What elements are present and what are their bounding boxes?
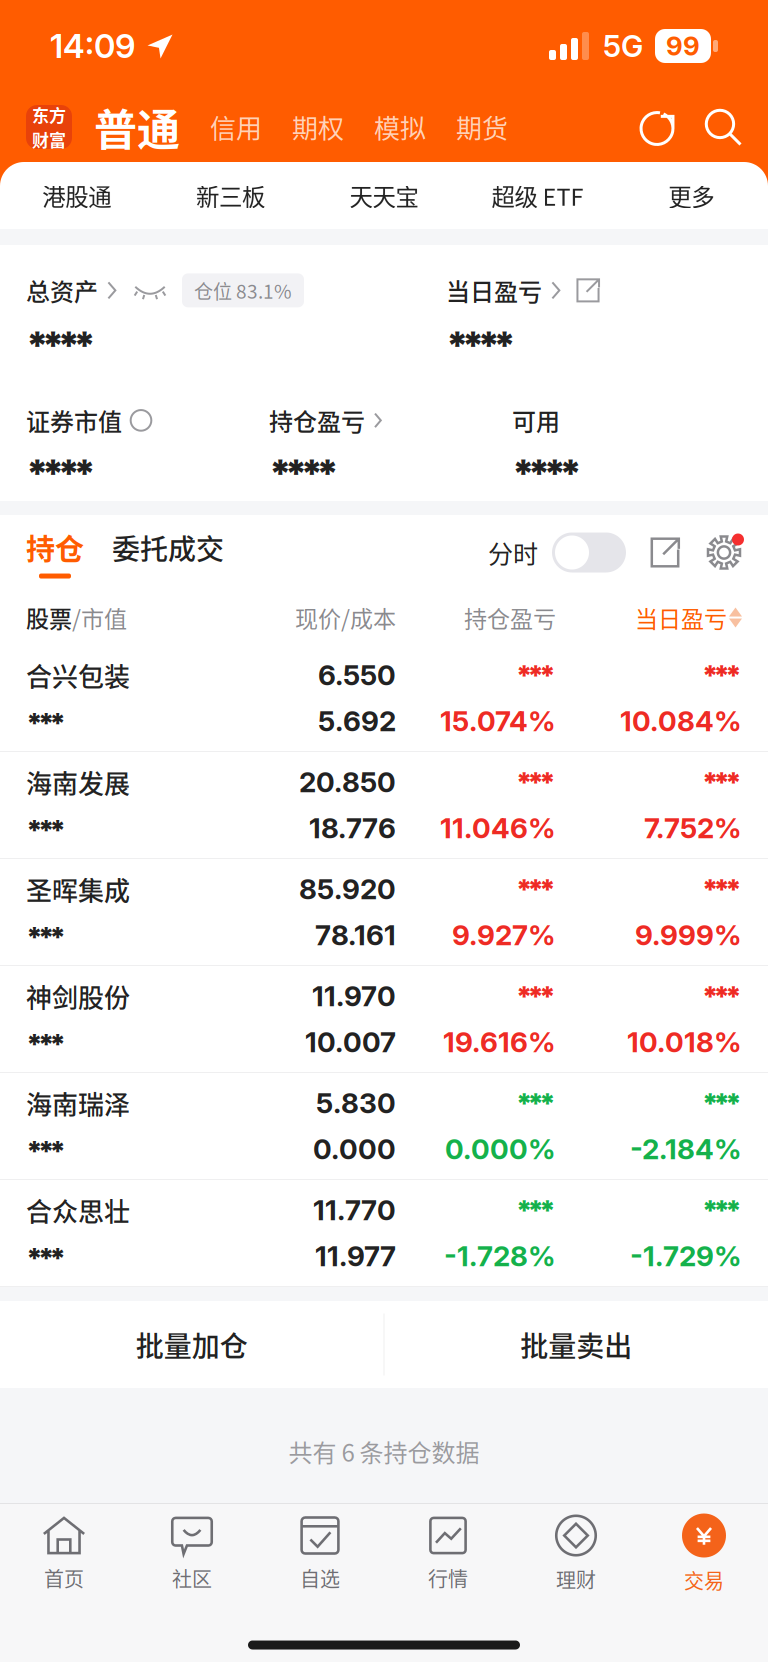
staticText: 理财 xyxy=(556,1564,596,1593)
staticText: 18.776 xyxy=(309,811,396,845)
button[interactable]: 批量卖出 xyxy=(384,1301,768,1388)
staticText: *** xyxy=(516,1086,556,1120)
staticText: *** xyxy=(702,872,742,906)
staticText: 10.084% xyxy=(620,704,742,738)
button[interactable]: 港股通 xyxy=(0,162,154,229)
button[interactable]: 海南发展 xyxy=(0,752,768,859)
staticText: 10.007 xyxy=(305,1025,396,1059)
button[interactable]: 合兴包装 xyxy=(0,645,768,752)
staticText: 9.999% xyxy=(635,918,742,952)
staticText: 财富 xyxy=(32,127,66,152)
button[interactable]: 合众思壮 xyxy=(0,1180,768,1287)
staticText: 85.920 xyxy=(299,872,396,906)
button[interactable]: 新三板 xyxy=(154,162,307,229)
staticText: **** xyxy=(26,322,96,368)
button[interactable]: Refresh xyxy=(638,108,676,146)
button[interactable]: 超级 ETF xyxy=(461,162,614,229)
staticText: 批量卖出 xyxy=(520,1324,632,1365)
staticText: *** xyxy=(702,979,742,1013)
button[interactable]: 持仓 xyxy=(26,526,84,579)
staticText: 持仓盈亏 xyxy=(269,403,365,438)
button[interactable]: Share xyxy=(650,537,680,567)
staticText: 东方 xyxy=(32,102,66,127)
staticText: 11.977 xyxy=(315,1239,396,1273)
staticText: *** xyxy=(516,765,556,799)
staticText: 天天宝 xyxy=(349,178,418,212)
staticText: 现价 xyxy=(295,601,341,634)
staticText: 共有 6 条持仓数据 xyxy=(288,1434,479,1469)
staticText: 批量加仓 xyxy=(136,1324,248,1365)
staticText: 交易 xyxy=(684,1565,724,1594)
staticText: 社区 xyxy=(172,1563,212,1592)
button[interactable]: 期权 xyxy=(292,108,344,146)
button[interactable]: 模拟 xyxy=(374,108,426,146)
staticText: 自选 xyxy=(300,1563,340,1592)
staticText: 更多 xyxy=(668,178,714,212)
staticText: 合兴包装 xyxy=(26,656,130,694)
staticText: 6.550 xyxy=(318,658,396,692)
staticText: 0.000 xyxy=(313,1132,396,1166)
staticText: 港股通 xyxy=(42,178,111,212)
staticText: 仓位 83.1% xyxy=(194,277,292,304)
staticText: /市值 xyxy=(72,601,127,634)
staticText: **** xyxy=(446,322,516,368)
staticText: *** xyxy=(26,920,66,954)
staticText: 10.018% xyxy=(627,1025,742,1059)
button[interactable]: 更多 xyxy=(614,162,768,229)
staticText: 模拟 xyxy=(374,108,426,146)
staticText: 首页 xyxy=(44,1563,84,1592)
button[interactable]: 社区 xyxy=(128,1504,256,1604)
staticText: 当日盈亏 xyxy=(446,273,542,308)
staticText: *** xyxy=(516,979,556,1013)
staticText: /成本 xyxy=(341,601,396,634)
staticText: 0.000% xyxy=(445,1132,556,1166)
staticText: *** xyxy=(516,872,556,906)
staticText: 神剑股份 xyxy=(26,977,130,1015)
staticText: 委托成交 xyxy=(112,527,224,568)
button[interactable]: Settings xyxy=(706,534,742,570)
button[interactable]: 天天宝 xyxy=(307,162,461,229)
staticText: 新三板 xyxy=(196,178,265,212)
staticText: **** xyxy=(512,450,582,496)
staticText: *** xyxy=(26,706,66,740)
staticText: 股票 xyxy=(26,601,72,634)
staticText: 99 xyxy=(666,30,700,62)
staticText: 合众思壮 xyxy=(26,1191,130,1229)
button[interactable]: 行情 xyxy=(384,1504,512,1604)
staticText: *** xyxy=(516,1193,556,1227)
button[interactable]: 信用 xyxy=(210,108,262,146)
button[interactable]: 神剑股份 xyxy=(0,966,768,1073)
staticText: 可用 xyxy=(512,403,560,438)
button[interactable]: 自选 xyxy=(256,1504,384,1604)
staticText: 证券市值 xyxy=(26,403,122,438)
staticText: 11.046% xyxy=(440,811,556,845)
staticText: *** xyxy=(26,1027,66,1061)
staticText: 19.616% xyxy=(443,1025,556,1059)
staticText: **** xyxy=(26,450,96,496)
staticText: 20.850 xyxy=(299,765,396,799)
button[interactable]: 海南瑞泽 xyxy=(0,1073,768,1180)
staticText: 15.074% xyxy=(440,704,556,738)
button[interactable]: 批量加仓 xyxy=(0,1301,383,1388)
button[interactable]: 期货 xyxy=(456,108,508,146)
staticText: 当日盈亏 xyxy=(635,601,727,634)
staticText: 14:09 xyxy=(50,26,135,66)
staticText: 7.752% xyxy=(644,811,742,845)
staticText: 超级 ETF xyxy=(492,178,584,212)
button[interactable]: 交易 xyxy=(640,1504,768,1604)
staticText: *** xyxy=(26,1241,66,1275)
staticText: *** xyxy=(702,658,742,692)
button[interactable]: 委托成交 xyxy=(112,527,224,578)
staticText: *** xyxy=(702,1086,742,1120)
staticText: 11.970 xyxy=(312,979,396,1013)
button[interactable]: Time-sharing toggle xyxy=(552,532,626,572)
staticText: 总资产 xyxy=(26,273,98,308)
staticText: 分时 xyxy=(488,534,538,571)
staticText: *** xyxy=(26,813,66,847)
button[interactable]: 首页 xyxy=(0,1504,128,1604)
button[interactable]: 圣晖集成 xyxy=(0,859,768,966)
staticText: 持仓 xyxy=(26,526,84,569)
button[interactable]: Search xyxy=(704,108,742,146)
button[interactable]: 理财 xyxy=(512,1504,640,1604)
staticText: *** xyxy=(702,1193,742,1227)
